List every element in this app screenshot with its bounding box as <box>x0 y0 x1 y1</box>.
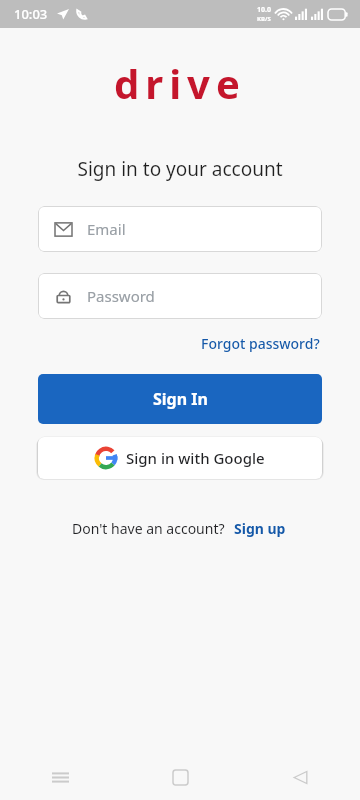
button[interactable]: Home <box>120 754 240 800</box>
staticText: drive <box>114 56 246 110</box>
staticText: Email <box>87 219 126 239</box>
button[interactable]: Sign in with Google <box>38 437 322 479</box>
button[interactable]: Forgot password? <box>199 331 322 356</box>
button[interactable]: Email <box>38 206 322 252</box>
staticText: Forgot password? <box>201 334 320 353</box>
button[interactable]: Recent apps <box>0 754 120 800</box>
staticText: Sign in to your account <box>77 156 283 182</box>
staticText: Sign in with Google <box>126 448 265 468</box>
button[interactable]: Sign up <box>232 516 288 541</box>
staticText: 10.0 <box>257 5 271 15</box>
button[interactable]: Back <box>240 754 360 800</box>
staticText: Sign In <box>153 388 208 410</box>
staticText: 10:03 <box>14 5 48 23</box>
staticText: KB/S <box>257 15 271 23</box>
button[interactable]: Password <box>38 273 322 319</box>
button[interactable]: Sign In <box>38 374 322 424</box>
staticText: Password <box>87 286 155 306</box>
staticText: Don't have an account? <box>72 519 225 538</box>
staticText: Sign up <box>234 519 286 538</box>
